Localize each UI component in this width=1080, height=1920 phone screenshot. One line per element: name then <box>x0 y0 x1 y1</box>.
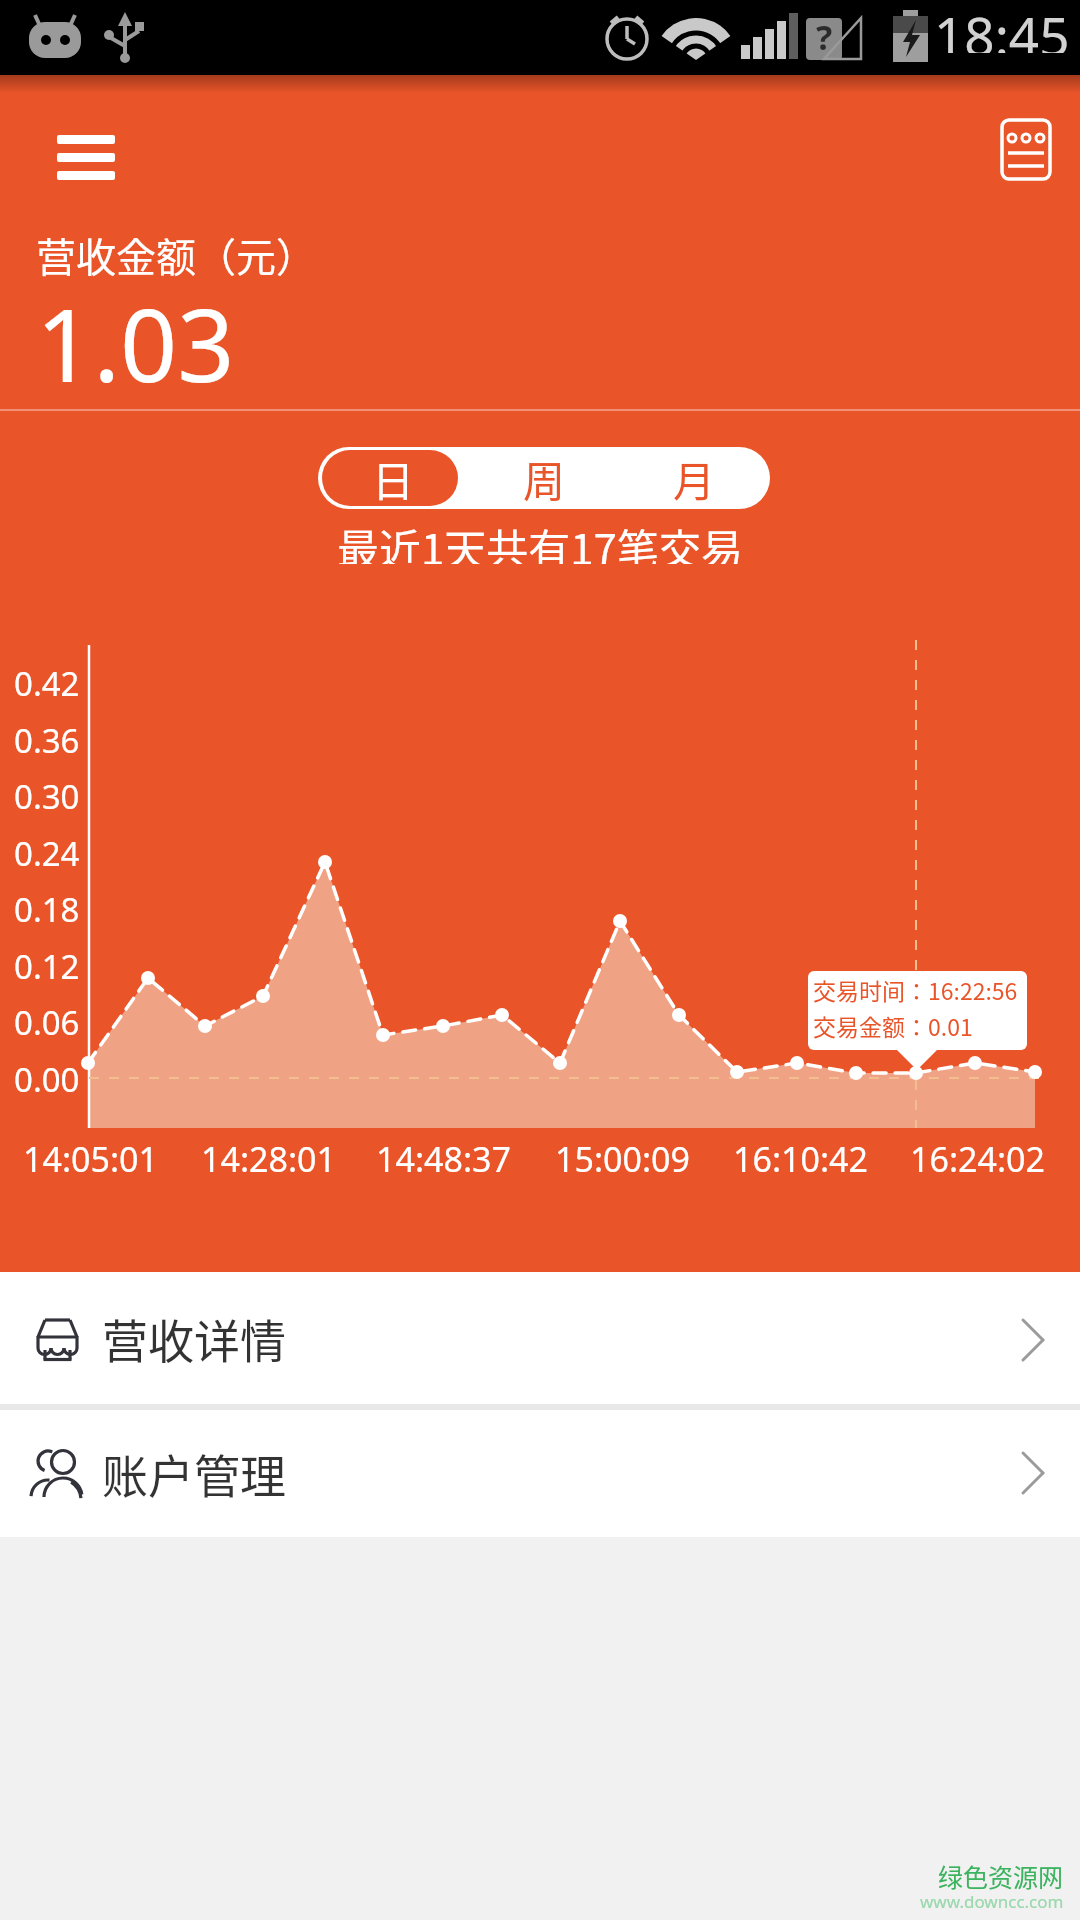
button[interactable] <box>0 1410 1080 1537</box>
staticText: 交易金额：0.01 <box>813 1009 973 1041</box>
staticText: 0.24 <box>14 831 80 875</box>
button[interactable] <box>318 447 469 509</box>
staticText: www.downcc.com <box>920 1890 1064 1912</box>
staticText: 周 <box>523 448 566 509</box>
staticText: 最近1天共有17笔交易 <box>337 516 743 564</box>
staticText: 15:00:09 <box>555 1136 690 1178</box>
staticText: 交易时间：16:22:56 <box>813 973 1018 1005</box>
staticText: ? <box>816 14 833 60</box>
button[interactable] <box>619 447 770 509</box>
button[interactable] <box>40 115 135 200</box>
staticText: 0.36 <box>14 718 80 762</box>
staticText: 0.06 <box>14 1000 80 1044</box>
staticText: 16:10:42 <box>733 1136 868 1178</box>
staticText: 0.18 <box>14 887 80 931</box>
staticText: 14:05:01 <box>23 1136 158 1178</box>
button[interactable] <box>985 103 1070 195</box>
staticText: 营收金额（元） <box>36 226 316 278</box>
staticText: 1.03 <box>36 275 235 385</box>
staticText: 18:45 <box>934 0 1070 53</box>
staticText: 0.00 <box>14 1057 80 1101</box>
staticText: 营收详情 <box>102 1305 286 1372</box>
staticText: 14:28:01 <box>201 1136 336 1178</box>
button[interactable] <box>0 1272 1080 1404</box>
staticText: 0.30 <box>14 774 80 818</box>
staticText: 账户管理 <box>102 1440 286 1507</box>
staticText: 14:48:37 <box>376 1136 511 1178</box>
staticText: 16:24:02 <box>910 1136 1045 1178</box>
staticText: 0.42 <box>14 661 80 705</box>
staticText: 月 <box>673 448 716 509</box>
staticText: 日 <box>372 448 415 509</box>
button[interactable] <box>469 447 619 509</box>
staticText: 0.12 <box>14 944 80 988</box>
staticText: 绿色资源网 <box>938 1858 1064 1890</box>
